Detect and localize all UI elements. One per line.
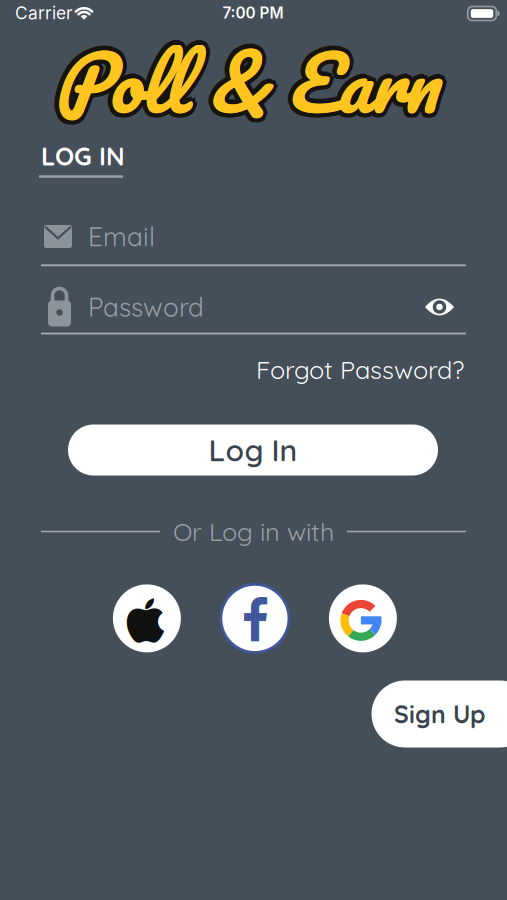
staticText: Poll & Earn bbox=[56, 21, 440, 148]
staticText: Poll & Earn bbox=[58, 19, 442, 145]
staticText: Poll & Earn bbox=[53, 19, 437, 146]
staticText: LOG IN bbox=[41, 140, 125, 172]
button[interactable]: Log in with Facebook bbox=[221, 584, 289, 652]
staticText: Log In bbox=[208, 431, 297, 469]
staticText: Poll & Earn bbox=[57, 15, 441, 142]
staticText:  bbox=[127, 598, 165, 646]
button[interactable]: Forgot Password? bbox=[256, 354, 464, 385]
staticText: Poll & Earn bbox=[51, 23, 435, 150]
button[interactable]: Email bbox=[44, 220, 507, 253]
button[interactable]: Password bbox=[48, 287, 425, 326]
staticText: Forgot Password? bbox=[256, 354, 464, 385]
button[interactable]: Log in with Apple bbox=[113, 584, 181, 652]
staticText: Poll & Earn bbox=[50, 22, 434, 149]
staticText: Poll & Earn bbox=[57, 22, 441, 149]
staticText: 7:00 PM bbox=[222, 4, 283, 22]
staticText: Poll & Earn bbox=[48, 19, 432, 145]
button[interactable]: Log in with Google bbox=[329, 584, 397, 652]
staticText: Poll & Earn bbox=[56, 16, 440, 143]
button[interactable]: Log In bbox=[68, 424, 438, 475]
staticText: Poll & Earn bbox=[51, 16, 435, 143]
button[interactable]: Sign Up bbox=[371, 680, 507, 747]
staticText: Poll & Earn bbox=[50, 15, 434, 142]
staticText:  bbox=[241, 597, 268, 645]
staticText: Sign Up bbox=[394, 699, 485, 729]
staticText: Poll & Earn bbox=[51, 21, 435, 148]
staticText: Or Log in with bbox=[173, 516, 334, 547]
staticText: Poll & Earn bbox=[56, 23, 440, 150]
staticText: Email bbox=[88, 220, 155, 253]
staticText: Poll & Earn bbox=[54, 19, 438, 145]
staticText: Poll & Earn bbox=[54, 19, 438, 146]
staticText: Poll & Earn bbox=[53, 24, 437, 150]
staticText: Carrier bbox=[15, 2, 73, 23]
staticText: Poll & Earn bbox=[53, 19, 437, 145]
staticText: Password bbox=[88, 291, 204, 323]
button[interactable]: Show password bbox=[425, 297, 454, 317]
staticText: Poll & Earn bbox=[53, 14, 437, 140]
